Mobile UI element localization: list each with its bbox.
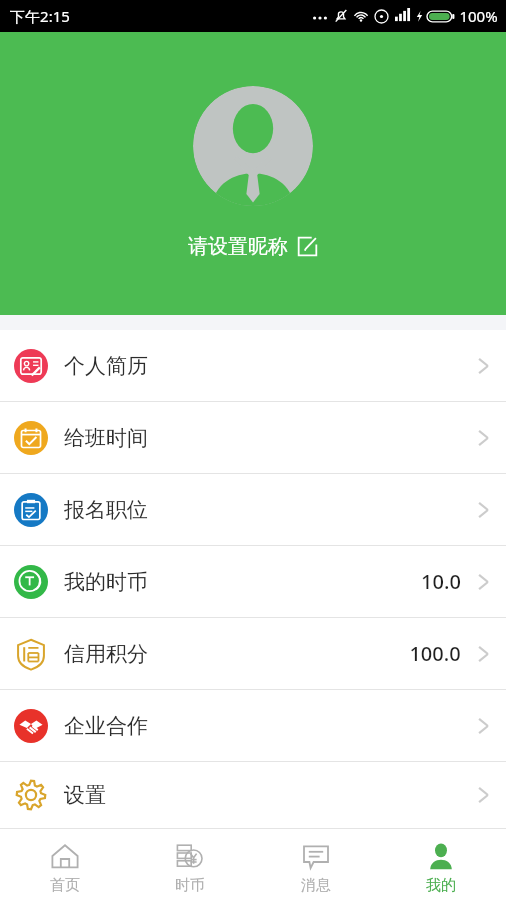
button[interactable]: 我的时币: [0, 546, 506, 617]
button[interactable]: 给班时间: [0, 402, 506, 473]
button[interactable]: 时币: [130, 829, 250, 900]
staticText: 10.0: [421, 568, 461, 595]
staticText: 个人简历: [64, 353, 148, 379]
button[interactable]: 请设置昵称: [182, 232, 324, 261]
staticText: 下午2:15: [10, 6, 70, 26]
button[interactable]: 个人简历: [0, 330, 506, 401]
button[interactable]: 企业合作: [0, 690, 506, 761]
staticText: 消息: [301, 876, 331, 895]
staticText: 设置: [64, 782, 106, 808]
staticText: 给班时间: [64, 425, 148, 451]
staticText: 100.0: [409, 640, 461, 667]
button[interactable]: 首页: [5, 829, 125, 900]
button[interactable]: 设置: [0, 762, 506, 828]
staticText: 报名职位: [64, 497, 148, 523]
staticText: 信用积分: [64, 641, 148, 667]
staticText: 我的: [426, 876, 456, 895]
staticText: 我的时币: [64, 569, 148, 595]
staticText: 时币: [175, 876, 205, 895]
button[interactable]: 我的: [381, 829, 501, 900]
button[interactable]: 信用积分: [0, 618, 506, 689]
button[interactable]: Avatar: [193, 86, 313, 206]
staticText: 请设置昵称: [188, 234, 288, 259]
button[interactable]: 消息: [256, 829, 376, 900]
staticText: 100%: [459, 6, 498, 26]
staticText: 企业合作: [64, 713, 148, 739]
staticText: 首页: [50, 876, 80, 895]
button[interactable]: 报名职位: [0, 474, 506, 545]
